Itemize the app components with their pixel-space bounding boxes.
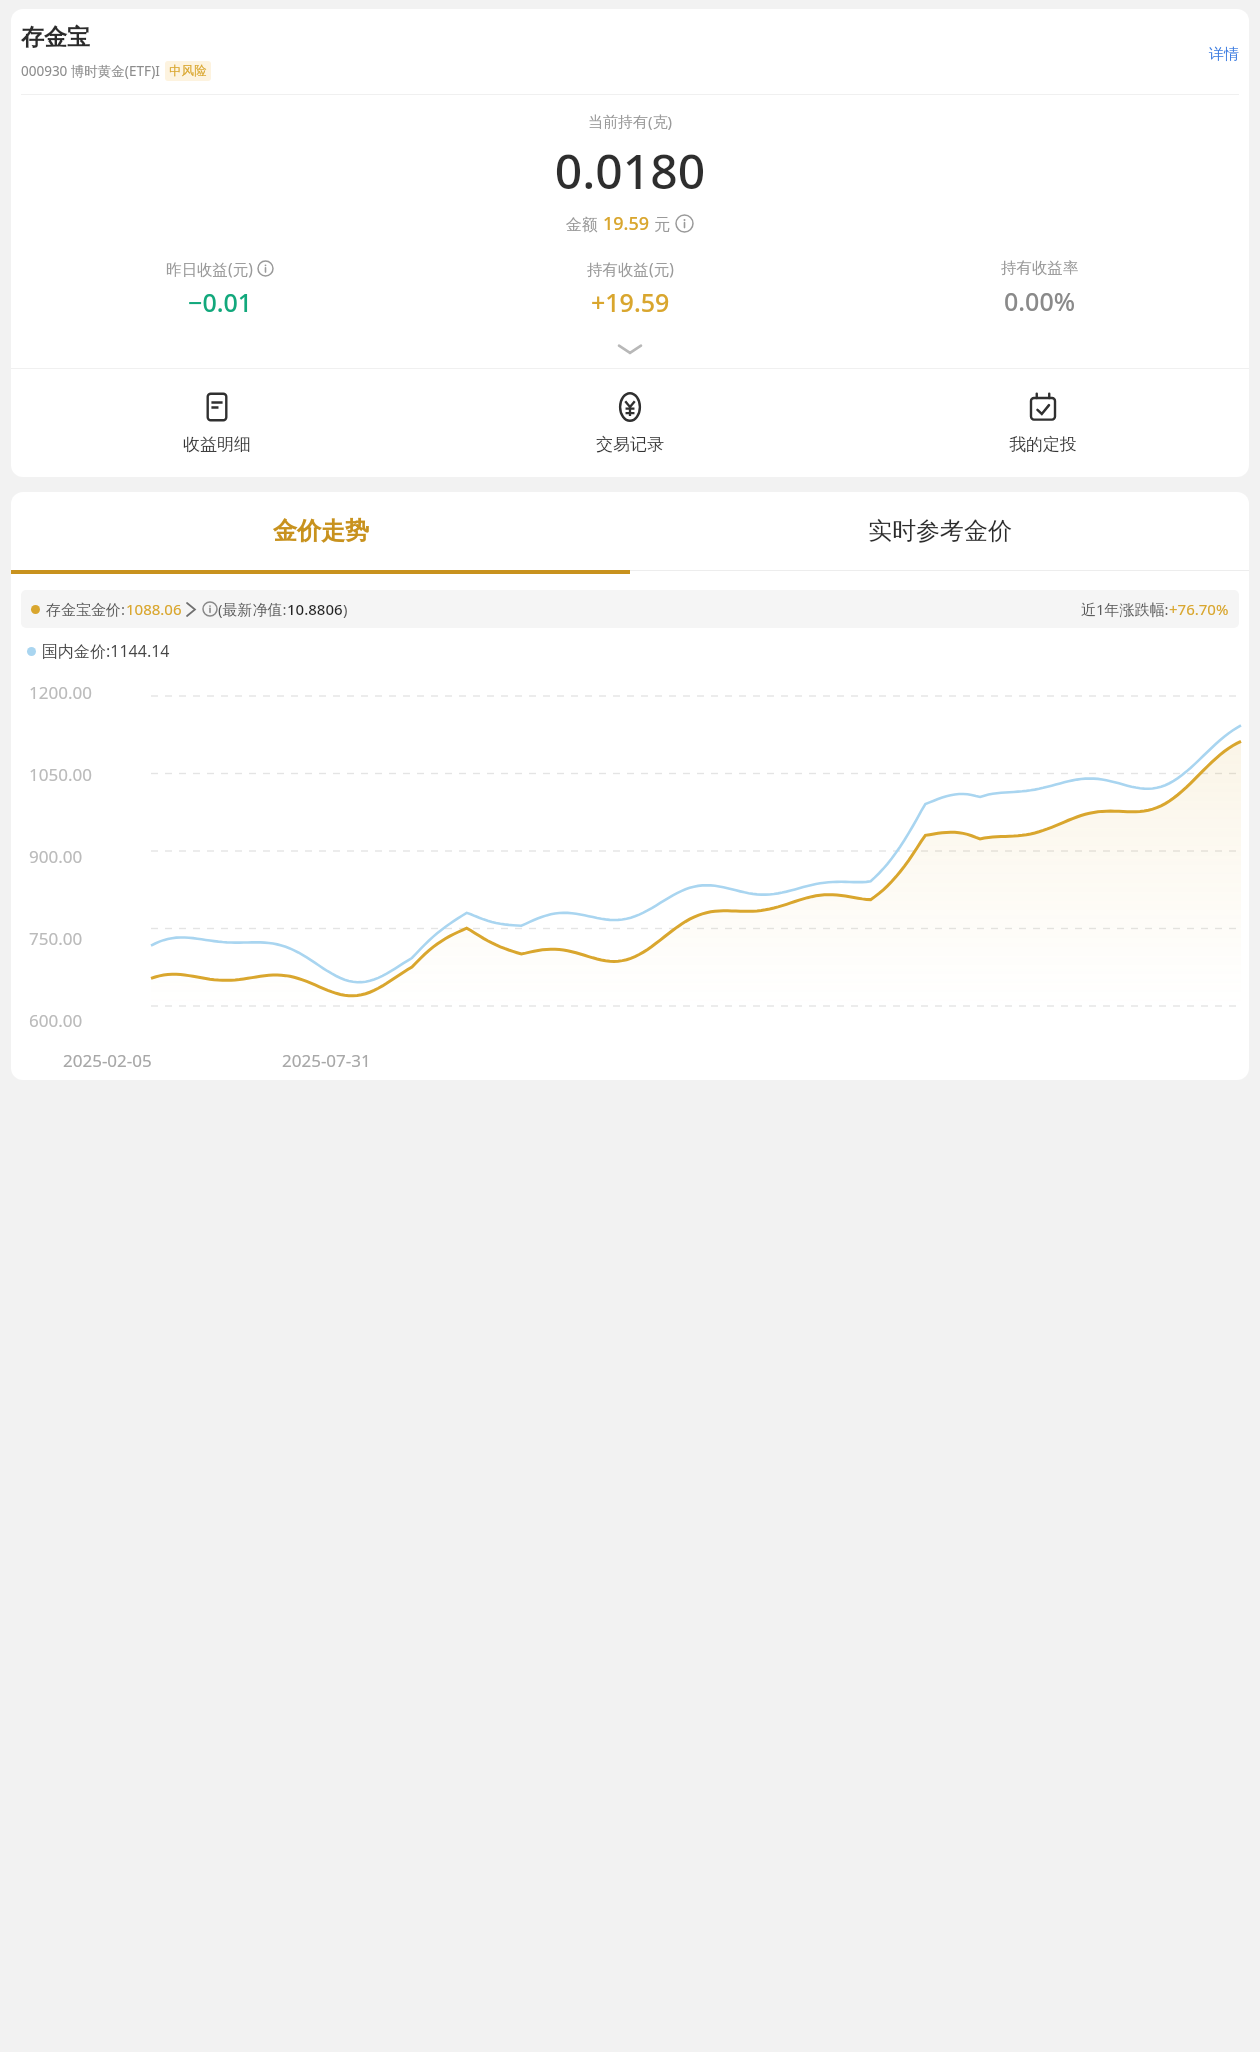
staticText: 存金宝	[21, 23, 90, 52]
button[interactable]: 我的定投	[836, 369, 1249, 477]
button[interactable]: 实时参考金价	[630, 492, 1249, 570]
staticText: 0.0180	[11, 138, 1249, 203]
staticText: 600.00	[29, 1009, 83, 1032]
button[interactable]: 展开	[11, 335, 1249, 363]
staticText: 1088.06	[126, 599, 182, 619]
staticText: 交易记录	[596, 434, 664, 455]
staticText: 19.59	[603, 211, 650, 236]
staticText: 存金宝金价:	[46, 599, 126, 619]
button[interactable]: 详情	[1201, 23, 1239, 68]
staticText: 2025-07-31	[282, 1049, 371, 1072]
button[interactable]: 交易记录	[423, 369, 836, 477]
staticText: 我的定投	[1009, 434, 1077, 455]
staticText: (最新净值:	[218, 599, 287, 619]
staticText: 750.00	[29, 927, 83, 950]
staticText: 中风险	[169, 63, 207, 79]
staticText: 昨日收益(元)	[166, 258, 253, 279]
button[interactable]: 收益明细	[11, 369, 423, 477]
staticText: 元	[650, 213, 675, 235]
button[interactable]: 存金宝金价:	[21, 590, 1239, 628]
staticText: 实时参考金价	[868, 516, 1012, 546]
staticText: 持有收益(元)	[587, 258, 674, 279]
staticText: )	[343, 599, 348, 619]
staticText: 000930 博时黄金(ETF)I	[21, 62, 160, 80]
staticText: 国内金价:1144.14	[42, 640, 170, 662]
staticText: +76.70%	[1169, 599, 1229, 619]
staticText: 1050.00	[29, 763, 92, 786]
staticText: 当前持有(克)	[11, 111, 1249, 131]
staticText: 近1年涨跌幅:	[1081, 599, 1169, 619]
staticText: 金额	[566, 213, 603, 235]
staticText: 900.00	[29, 845, 83, 868]
staticText: 10.8806	[287, 599, 343, 619]
staticText: 1200.00	[29, 681, 92, 704]
staticText: 金价走势	[273, 516, 369, 546]
staticText: 持有收益率	[1001, 258, 1079, 278]
staticText: +19.59	[591, 285, 670, 319]
staticText: 收益明细	[183, 434, 251, 455]
staticText: 详情	[1209, 45, 1239, 64]
staticText: 0.00%	[1004, 284, 1076, 318]
button[interactable]: 金价走势	[11, 492, 630, 570]
staticText: −0.01	[188, 285, 253, 319]
button[interactable]: 金额说明	[675, 214, 694, 233]
staticText: 2025-02-05	[63, 1049, 152, 1072]
